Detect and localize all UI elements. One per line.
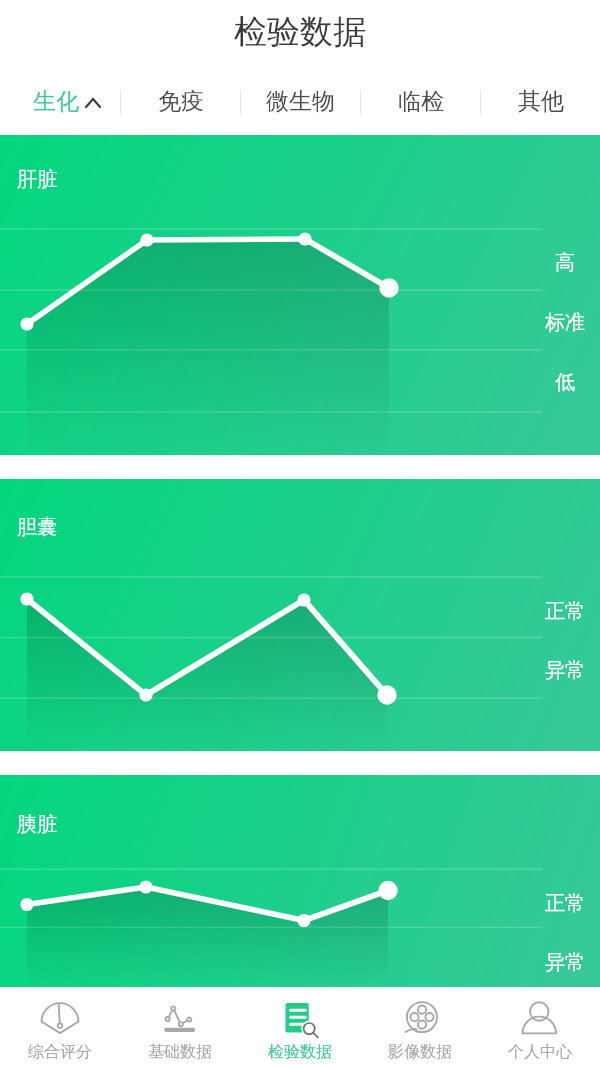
staticText: 标准	[545, 310, 585, 335]
staticText: 微生物	[266, 87, 335, 116]
button[interactable]: 肝脏	[0, 135, 600, 455]
staticText: 基础数据	[148, 1042, 212, 1062]
button[interactable]: 个人中心	[480, 998, 600, 1067]
staticText: 检验数据	[268, 1042, 332, 1062]
staticText: 胆囊	[17, 515, 57, 540]
staticText: 低	[555, 370, 575, 395]
staticText: 肝脏	[17, 167, 57, 192]
button[interactable]: 临检	[361, 68, 480, 135]
staticText: 综合评分	[28, 1042, 92, 1062]
staticText: 正常	[545, 891, 585, 916]
button[interactable]: 综合评分	[0, 998, 120, 1067]
staticText: 高	[555, 250, 575, 275]
other: 个人中心	[523, 1003, 558, 1034]
button[interactable]: 基础数据	[120, 998, 240, 1067]
button[interactable]: 微生物	[241, 68, 360, 135]
button[interactable]: 影像数据	[360, 998, 480, 1067]
button[interactable]: 免疫	[121, 68, 240, 135]
other: 影像数据	[404, 1003, 437, 1034]
other: 综合评分	[41, 1003, 79, 1034]
staticText: 异常	[545, 950, 585, 975]
button[interactable]: 其他	[481, 68, 600, 135]
staticText: 其他	[518, 87, 564, 116]
button[interactable]: 生化	[0, 68, 120, 135]
button[interactable]: 胰脏	[0, 775, 600, 987]
button[interactable]: 胆囊	[0, 479, 600, 751]
staticText: 检验数据	[234, 11, 366, 53]
other: 检验数据	[284, 1003, 317, 1034]
staticText: 生化	[33, 87, 79, 116]
staticText: 免疫	[158, 87, 204, 116]
staticText: 影像数据	[388, 1042, 452, 1062]
staticText: 正常	[545, 599, 585, 624]
staticText: 临检	[398, 87, 444, 116]
staticText: 异常	[545, 658, 585, 683]
staticText: 个人中心	[508, 1042, 572, 1062]
other: 基础数据	[164, 1003, 196, 1034]
button[interactable]: 检验数据	[240, 998, 360, 1067]
staticText: 胰脏	[17, 812, 57, 837]
